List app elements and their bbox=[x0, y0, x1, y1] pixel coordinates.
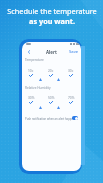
staticText: 30c bbox=[68, 69, 74, 73]
button[interactable]: 20c bbox=[45, 69, 57, 76]
staticText: Save bbox=[69, 49, 79, 55]
staticText: 50% bbox=[48, 96, 55, 100]
button[interactable]: 10c bbox=[25, 69, 37, 76]
staticText: Alert bbox=[46, 49, 57, 55]
staticText: Schedule the temperature bbox=[7, 6, 97, 16]
staticText: as you want. bbox=[29, 16, 75, 26]
button[interactable]: Push notification when an alert happens bbox=[22, 112, 81, 124]
button[interactable]: 30c bbox=[65, 69, 77, 76]
button[interactable]: 50% bbox=[45, 96, 57, 103]
staticText: Relative Humidity bbox=[25, 86, 51, 90]
staticText: 20c bbox=[48, 69, 54, 73]
staticText: 10c bbox=[28, 69, 34, 73]
staticText: Temperature bbox=[25, 58, 44, 62]
staticText: 70% bbox=[68, 96, 75, 100]
button[interactable]: Back bbox=[26, 49, 31, 54]
button[interactable]: 70% bbox=[65, 96, 77, 103]
staticText: Push notification when an alert happens bbox=[25, 117, 76, 121]
staticText: 30% bbox=[28, 96, 35, 100]
button[interactable]: Save bbox=[69, 49, 79, 55]
button[interactable]: 30% bbox=[25, 96, 37, 103]
